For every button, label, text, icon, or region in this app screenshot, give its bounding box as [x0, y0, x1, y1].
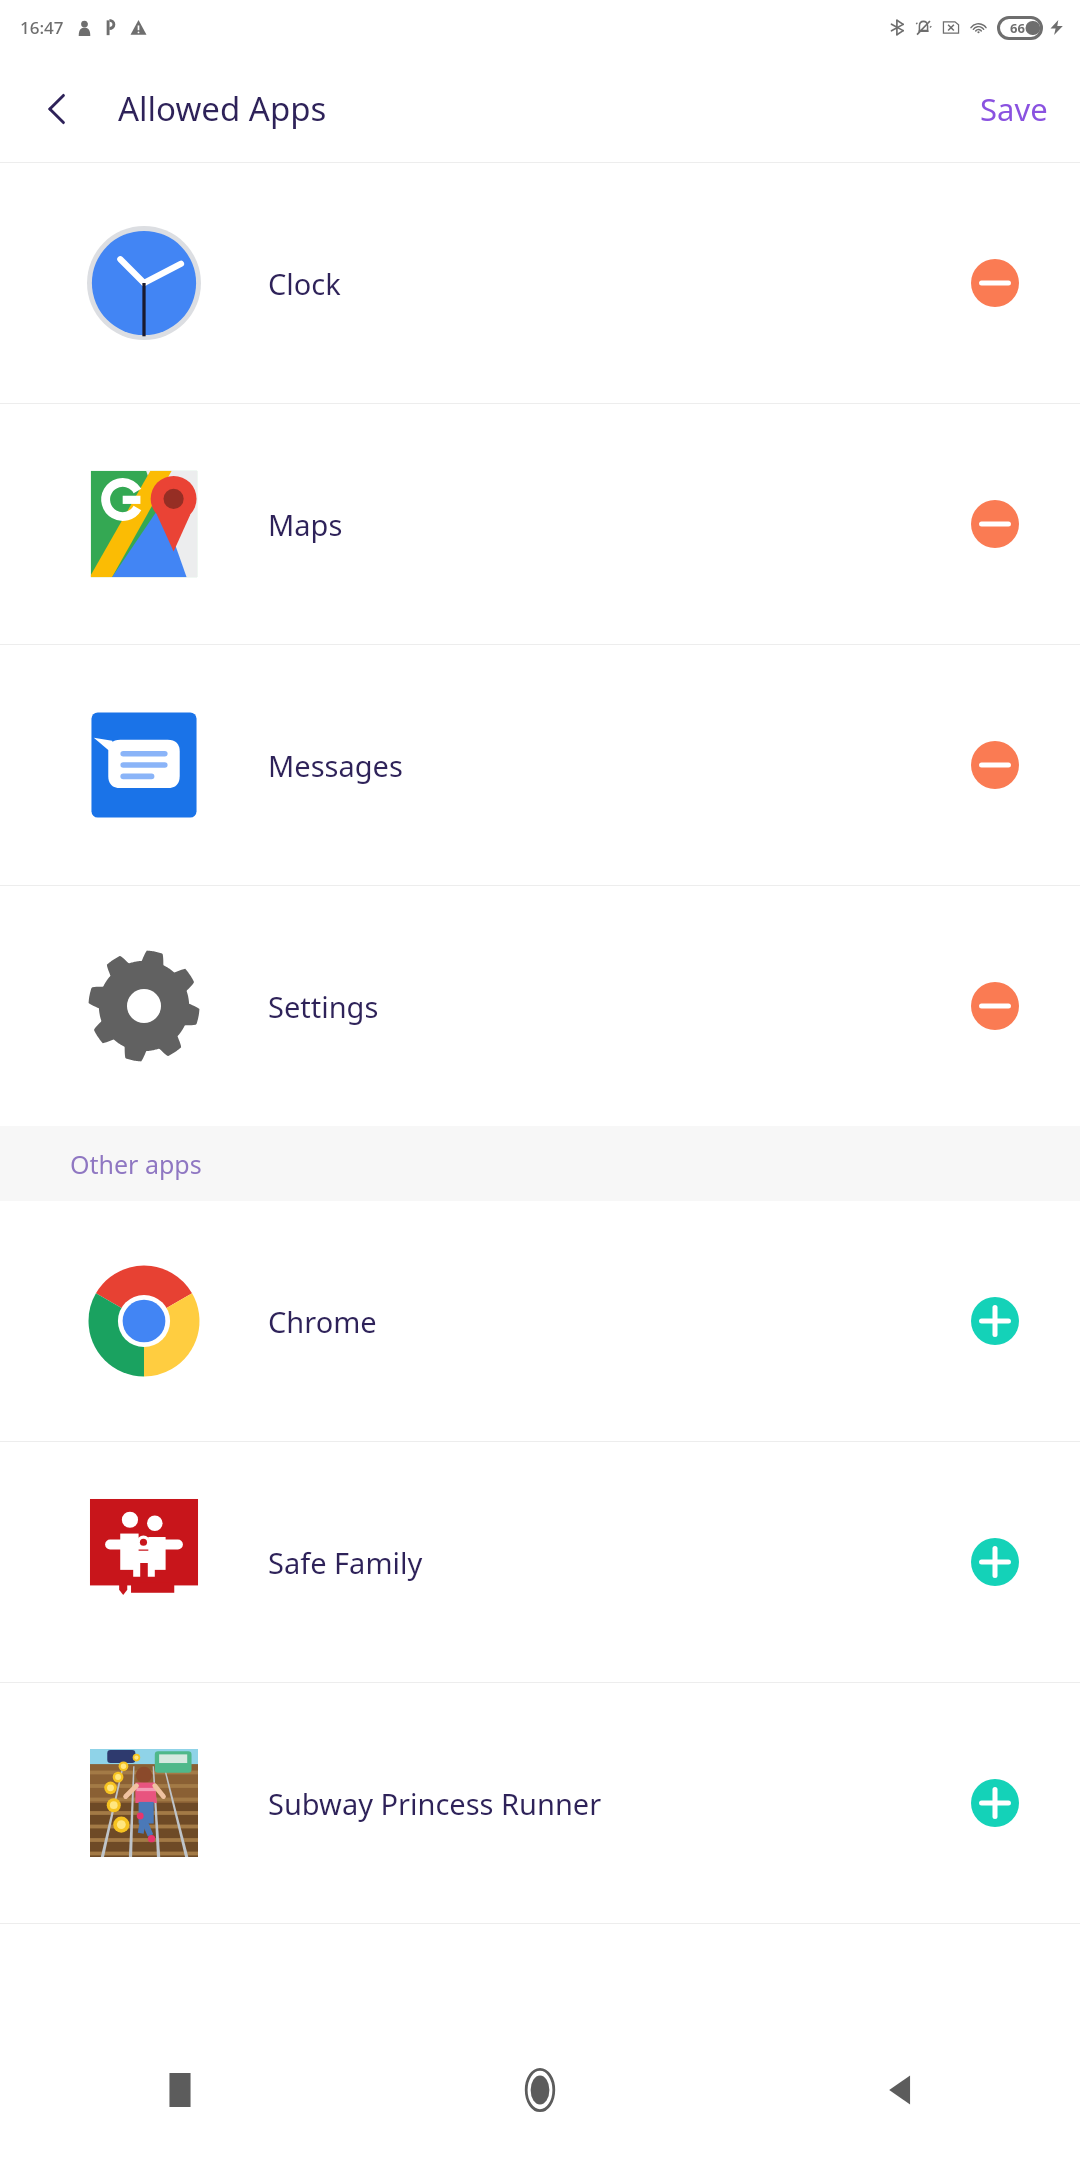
- button[interactable]: Recent apps: [0, 2020, 360, 2160]
- staticText: 66: [1010, 19, 1025, 37]
- staticText: Clock: [268, 264, 950, 303]
- button[interactable]: Safe Family: [0, 1442, 1080, 1682]
- staticText: Allowed Apps: [118, 86, 327, 131]
- button[interactable]: Remove Settings: [950, 961, 1040, 1051]
- staticText: Other apps: [70, 1147, 202, 1181]
- button[interactable]: Clock: [0, 163, 1080, 403]
- staticText: Messages: [268, 746, 950, 785]
- button[interactable]: Messages: [0, 645, 1080, 885]
- button[interactable]: Maps: [0, 404, 1080, 644]
- button[interactable]: Add Subway Princess Runner: [950, 1758, 1040, 1848]
- staticText: Maps: [268, 505, 950, 544]
- button[interactable]: Chrome: [0, 1201, 1080, 1441]
- staticText: Chrome: [268, 1302, 950, 1341]
- button[interactable]: Back: [30, 81, 86, 137]
- button[interactable]: Remove Clock: [950, 238, 1040, 328]
- button[interactable]: Remove Messages: [950, 720, 1040, 810]
- button[interactable]: Subway Princess Runner: [0, 1683, 1080, 1923]
- button[interactable]: Save: [948, 74, 1080, 144]
- staticText: Safe Family: [268, 1543, 950, 1582]
- staticText: Save: [980, 88, 1048, 130]
- button[interactable]: Back: [720, 2020, 1080, 2160]
- button[interactable]: Settings: [0, 886, 1080, 1126]
- staticText: 16:47: [20, 16, 64, 39]
- button[interactable]: Add Safe Family: [950, 1517, 1040, 1607]
- button[interactable]: Remove Maps: [950, 479, 1040, 569]
- staticText: Settings: [268, 987, 950, 1026]
- button[interactable]: Home: [360, 2020, 720, 2160]
- button[interactable]: Add Chrome: [950, 1276, 1040, 1366]
- staticText: Subway Princess Runner: [268, 1784, 950, 1823]
